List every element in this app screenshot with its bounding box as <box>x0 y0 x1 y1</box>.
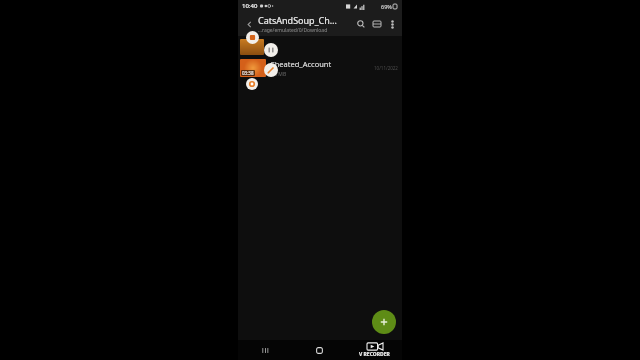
button[interactable]: 03:38 <box>238 55 402 81</box>
button[interactable]: Recorder menu <box>246 78 258 90</box>
button[interactable]: Stop recording <box>246 31 259 44</box>
button[interactable]: View mode <box>369 16 385 32</box>
button[interactable]: CatsAndSoup_Ch… <box>258 14 353 34</box>
staticText: Cheated_Account <box>270 59 332 69</box>
staticText: 10/11/2022 <box>374 65 398 71</box>
button[interactable]: Home <box>292 340 347 360</box>
button[interactable]: Back <box>347 340 402 360</box>
staticText: V RECORDER <box>359 351 390 358</box>
button[interactable]: Draw <box>264 63 278 77</box>
button[interactable]: New recording <box>372 310 396 334</box>
staticText: CatsAndSoup_Ch… <box>258 14 337 26</box>
button[interactable]: Recents <box>238 340 292 360</box>
button[interactable]: Pause recording <box>264 43 278 57</box>
button[interactable]: Search <box>353 16 369 32</box>
staticText: 7.3 MB <box>270 71 287 78</box>
staticText: 03:38 <box>242 70 254 76</box>
staticText: 10:40 <box>242 2 258 10</box>
button[interactable]: More options <box>385 17 399 31</box>
button[interactable]: Back <box>241 16 257 32</box>
button[interactable] <box>238 36 402 55</box>
staticText: …rage/emulated/0/Download <box>258 27 328 34</box>
staticText: 69% <box>381 3 392 10</box>
